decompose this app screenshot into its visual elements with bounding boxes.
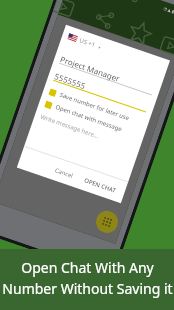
staticText: Save number for later use: [59, 91, 130, 122]
staticText: Project Manager: [59, 53, 122, 84]
button[interactable]: Cancel: [51, 165, 76, 182]
staticText: Number Without Saving it: [2, 279, 173, 298]
button[interactable]: Dial pad: [93, 208, 121, 236]
button[interactable]: OPEN CHAT: [81, 175, 120, 197]
staticText: Write message here...: [39, 113, 101, 140]
button[interactable]: Save number for later use: [48, 87, 130, 122]
staticText: ▾: [98, 45, 102, 50]
staticText: Cancel: [54, 166, 74, 180]
button[interactable]: Open chat with message: [44, 99, 123, 133]
staticText: 5555555: [53, 70, 88, 91]
staticText: Open Chat With Any: [21, 258, 154, 277]
staticText: OPEN CHAT: [83, 176, 118, 195]
staticText: Open chat with message: [54, 103, 123, 133]
staticText: US +1: [78, 36, 97, 49]
staticText: ◔ ▲ ▮ 4:15 PM: [163, 6, 174, 19]
